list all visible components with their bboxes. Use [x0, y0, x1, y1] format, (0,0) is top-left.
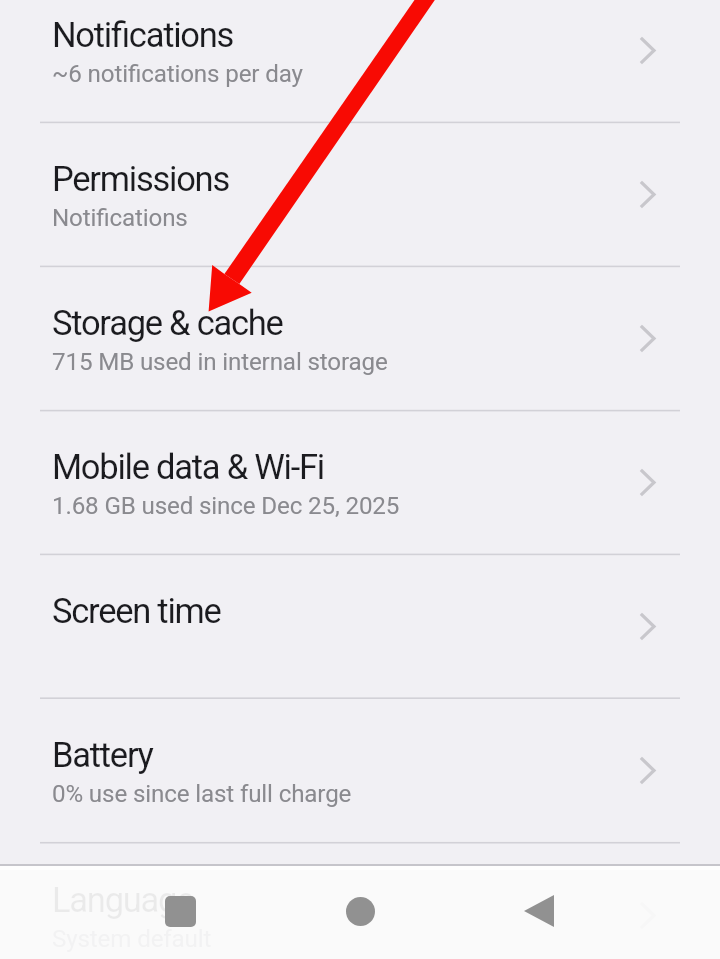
staticText: Permissions — [52, 159, 229, 199]
button[interactable]: Home — [346, 897, 375, 926]
other: Open — [642, 471, 654, 494]
button[interactable]: Recent apps — [165, 896, 196, 927]
button[interactable]: Screen time — [0, 554, 720, 698]
staticText: Battery — [52, 735, 153, 775]
other: Open — [642, 39, 654, 62]
other: Open — [642, 615, 654, 638]
staticText: ~6 notifications per day — [52, 60, 303, 88]
staticText: Notifications — [52, 15, 234, 55]
button[interactable]: Mobile data & Wi-Fi — [0, 410, 720, 554]
other: Open — [642, 759, 654, 782]
staticText: Language — [52, 880, 194, 920]
staticText: 715 MB used in internal storage — [52, 348, 388, 376]
button[interactable]: Notifications — [0, 0, 720, 122]
button[interactable]: Permissions — [0, 122, 720, 266]
other: Open — [642, 183, 654, 206]
button[interactable]: Battery — [0, 698, 720, 842]
button[interactable]: Back — [524, 895, 554, 927]
button[interactable]: Storage & cache — [0, 266, 720, 410]
other: Open — [642, 327, 654, 350]
staticText: Mobile data & Wi-Fi — [52, 447, 324, 487]
staticText: System default — [52, 925, 212, 953]
staticText: Storage & cache — [52, 303, 283, 343]
staticText: Screen time — [52, 591, 221, 631]
button[interactable]: Language — [0, 843, 720, 959]
staticText: 1.68 GB used since Dec 25, 2025 — [52, 492, 400, 520]
staticText: 0% use since last full charge — [52, 780, 352, 808]
staticText: Notifications — [52, 204, 188, 232]
